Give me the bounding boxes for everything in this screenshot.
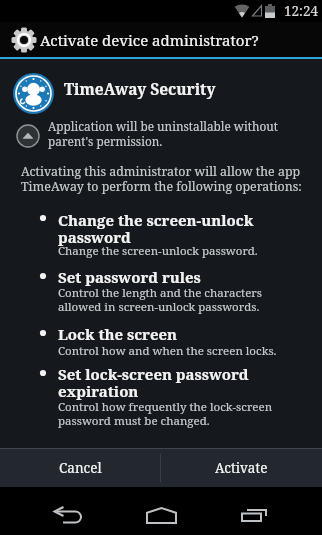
button[interactable]	[129, 487, 193, 535]
button[interactable]	[36, 487, 100, 535]
staticText: Activate	[215, 459, 268, 477]
staticText: Change the screen-unlock password	[58, 210, 254, 248]
staticText: Activate device administrator?	[40, 30, 259, 50]
staticText: TimeAway Security	[64, 78, 216, 99]
button[interactable]	[16, 124, 40, 148]
staticText: Lock the screen	[58, 324, 178, 344]
staticText: 12:24	[284, 2, 319, 20]
staticText: Control how frequently the lock-screen p…	[58, 399, 273, 428]
staticText: Set password rules	[58, 267, 201, 287]
staticText: Cancel	[59, 459, 102, 477]
staticText: Control how and when the screen locks.	[58, 343, 277, 359]
staticText: Control the length and the characters al…	[58, 285, 262, 314]
staticText: Set lock-screen password expiration	[58, 364, 249, 402]
button[interactable]	[222, 487, 286, 535]
button[interactable]: Activate	[161, 449, 322, 487]
staticText: Change the screen-unlock password.	[58, 243, 258, 259]
staticText: Activating this administrator will allow…	[21, 163, 302, 194]
button[interactable]: Cancel	[0, 449, 160, 487]
staticText: Application will be uninstallable withou…	[48, 118, 278, 150]
